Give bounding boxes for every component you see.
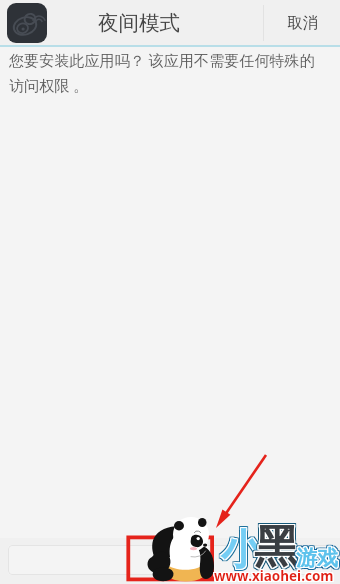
staticText: 黑 — [256, 519, 301, 576]
staticText: 游戏 — [295, 545, 337, 571]
staticText: 小 — [220, 524, 261, 576]
staticText: 小 — [223, 527, 264, 579]
staticText: 小 — [219, 526, 260, 578]
staticText: 黑 — [253, 518, 298, 575]
staticText: 小 — [219, 525, 260, 577]
staticText: 游戏 — [295, 547, 337, 573]
staticText: 小 — [221, 524, 262, 576]
staticText: 黑 — [252, 519, 297, 576]
staticText: 小 — [222, 523, 263, 575]
staticText: 游戏 — [297, 546, 339, 572]
staticText: 游戏 — [294, 545, 336, 571]
staticText: 小 — [219, 527, 260, 579]
staticText: 安装 — [155, 551, 185, 570]
staticText: 小 — [219, 524, 260, 576]
staticText: 游戏 — [298, 546, 340, 572]
staticText: 小 — [222, 524, 263, 576]
staticText: 游戏 — [297, 546, 339, 572]
staticText: 小 — [221, 527, 262, 579]
staticText: 小 — [221, 525, 262, 577]
staticText: 黑 — [255, 520, 300, 577]
staticText: www.xiaohei.com — [213, 568, 333, 584]
staticText: 游戏 — [298, 545, 340, 571]
staticText: 黑 — [254, 520, 299, 577]
staticText: 小 — [221, 526, 262, 578]
staticText: www.xiaohei.com — [215, 566, 335, 584]
staticText: 游戏 — [295, 545, 337, 571]
staticText: 小 — [220, 523, 261, 575]
staticText: 小 — [223, 524, 264, 576]
staticText: 小 — [220, 525, 261, 577]
staticText: 黑 — [255, 519, 300, 576]
staticText: 黑 — [255, 517, 300, 574]
staticText: www.xiaohei.com — [213, 566, 333, 584]
staticText: www.xiaohei.com — [215, 568, 335, 584]
staticText: 黑 — [255, 518, 300, 575]
staticText: 黑 — [256, 517, 301, 574]
staticText: 黑 — [254, 518, 299, 575]
staticText: 小 — [223, 523, 264, 575]
staticText: 取消 — [287, 13, 318, 33]
staticText: 游戏 — [296, 545, 338, 571]
staticText: 小 — [221, 526, 262, 578]
staticText: 游戏 — [298, 544, 340, 570]
staticText: 黑 — [254, 521, 299, 578]
staticText: www.xiaohei.com — [213, 567, 333, 584]
staticText: 小 — [222, 527, 263, 579]
staticText: 黑 — [253, 519, 298, 576]
staticText: 黑 — [253, 518, 298, 575]
staticText: www.xiaohei.com — [214, 568, 334, 584]
staticText: 小 — [220, 524, 261, 576]
staticText: 黑 — [254, 519, 299, 576]
staticText: 游戏 — [295, 544, 337, 570]
staticText: 游戏 — [297, 545, 339, 571]
staticText: 黑 — [253, 519, 298, 576]
staticText: 游戏 — [294, 547, 336, 573]
staticText: 黑 — [252, 517, 297, 574]
staticText: 游戏 — [295, 543, 337, 569]
staticText: 小 — [221, 523, 262, 575]
staticText: 游戏 — [297, 547, 339, 573]
staticText: 游戏 — [296, 544, 338, 570]
staticText: 黑 — [254, 520, 299, 577]
staticText: 游戏 — [296, 547, 338, 573]
staticText: 小 — [222, 526, 263, 578]
staticText: 小 — [221, 524, 262, 576]
staticText: 黑 — [254, 518, 299, 575]
staticText: 游戏 — [298, 543, 340, 569]
staticText: 黑 — [252, 518, 297, 575]
staticText: 小 — [220, 525, 261, 577]
staticText: 游戏 — [297, 545, 339, 571]
staticText: 黑 — [253, 521, 298, 578]
staticText: 游戏 — [296, 543, 338, 569]
staticText: 游戏 — [294, 543, 336, 569]
staticText: 小 — [222, 526, 263, 578]
staticText: 小 — [222, 524, 263, 576]
staticText: 小 — [220, 526, 261, 578]
staticText: 小 — [222, 525, 263, 577]
staticText: 黑 — [256, 518, 301, 575]
staticText: 黑 — [256, 520, 301, 577]
staticText: 黑 — [253, 520, 298, 577]
staticText: 小 — [219, 523, 260, 575]
staticText: 游戏 — [297, 544, 339, 570]
staticText: 黑 — [256, 521, 301, 578]
staticText: 黑 — [252, 520, 297, 577]
other: App icon — [7, 3, 47, 43]
staticText: 黑 — [254, 517, 299, 574]
staticText: 游戏 — [298, 547, 340, 573]
staticText: www.xiaohei.com — [214, 566, 334, 584]
button[interactable]: 取消 — [264, 13, 340, 33]
staticText: 游戏 — [294, 544, 336, 570]
staticText: 您要安装此应用吗？ 该应用不需要任何特殊的 访问权限 。 — [9, 50, 315, 95]
button[interactable]: 安装 — [8, 545, 332, 575]
staticText: 游戏 — [296, 546, 338, 572]
staticText: www.xiaohei.com — [214, 567, 334, 584]
staticText: 黑 — [255, 520, 300, 577]
staticText: 黑 — [252, 521, 297, 578]
staticText: 黑 — [255, 521, 300, 578]
staticText: 夜间模式 — [98, 10, 180, 36]
staticText: 黑 — [253, 517, 298, 574]
staticText: 小 — [223, 525, 264, 577]
staticText: 小 — [220, 526, 261, 578]
